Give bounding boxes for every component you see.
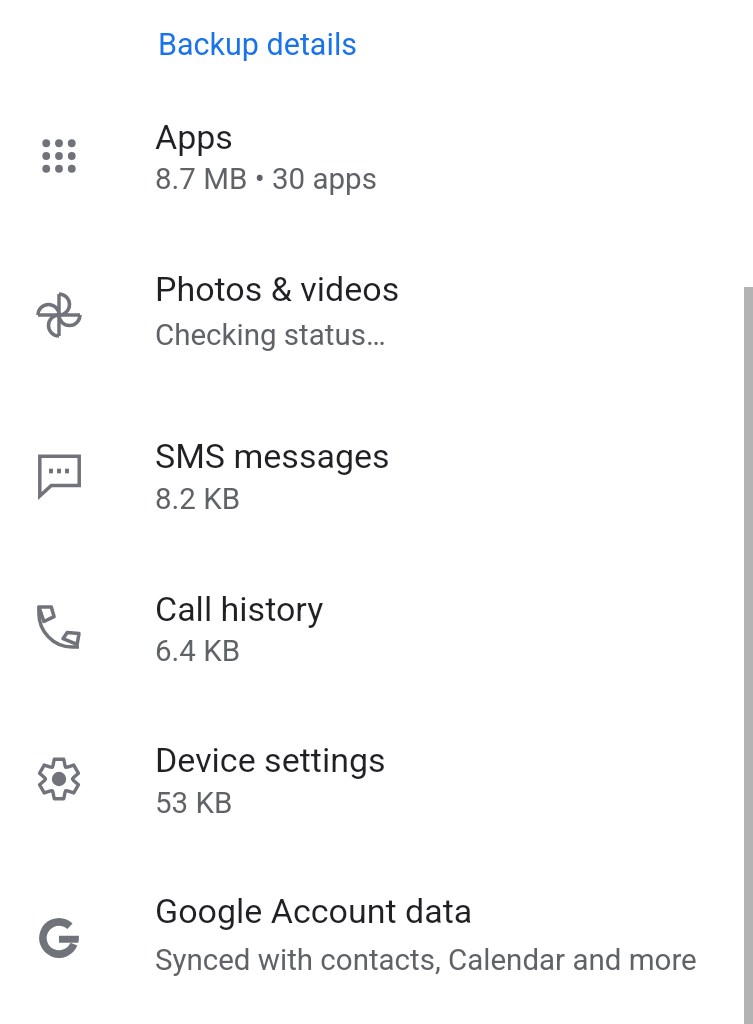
button[interactable]: Photos and videos bbox=[0, 248, 753, 415]
staticText: Call history bbox=[155, 589, 324, 629]
staticText: 8.7 MB • 30 apps bbox=[155, 162, 377, 197]
button[interactable]: Apps bbox=[0, 96, 753, 248]
staticText: 6.4 KB bbox=[155, 634, 241, 669]
other: Apps bbox=[32, 129, 86, 183]
staticText: 53 KB bbox=[155, 786, 233, 821]
other: Call history bbox=[32, 600, 86, 654]
staticText: SMS messages bbox=[155, 436, 390, 476]
other: Photos and videos bbox=[32, 288, 86, 342]
button[interactable]: Device settings bbox=[0, 719, 753, 870]
staticText: Backup details bbox=[158, 27, 358, 63]
staticText: Checking status… bbox=[155, 318, 386, 353]
staticText: Apps bbox=[155, 117, 233, 157]
other: SMS messages bbox=[32, 448, 86, 502]
other: Google Account data bbox=[32, 911, 86, 965]
button[interactable]: SMS messages bbox=[0, 415, 753, 567]
staticText: Photos & videos bbox=[155, 269, 400, 309]
staticText: Synced with contacts, Calendar and more bbox=[155, 943, 697, 978]
staticText: Google Account data bbox=[155, 891, 473, 931]
button[interactable]: Backup details bbox=[158, 27, 358, 63]
other: Device settings bbox=[32, 752, 86, 806]
staticText: 8.2 KB bbox=[155, 482, 241, 517]
staticText: Device settings bbox=[155, 740, 386, 780]
button[interactable]: Call history bbox=[0, 567, 753, 719]
button[interactable]: Google Account data bbox=[0, 870, 753, 1022]
